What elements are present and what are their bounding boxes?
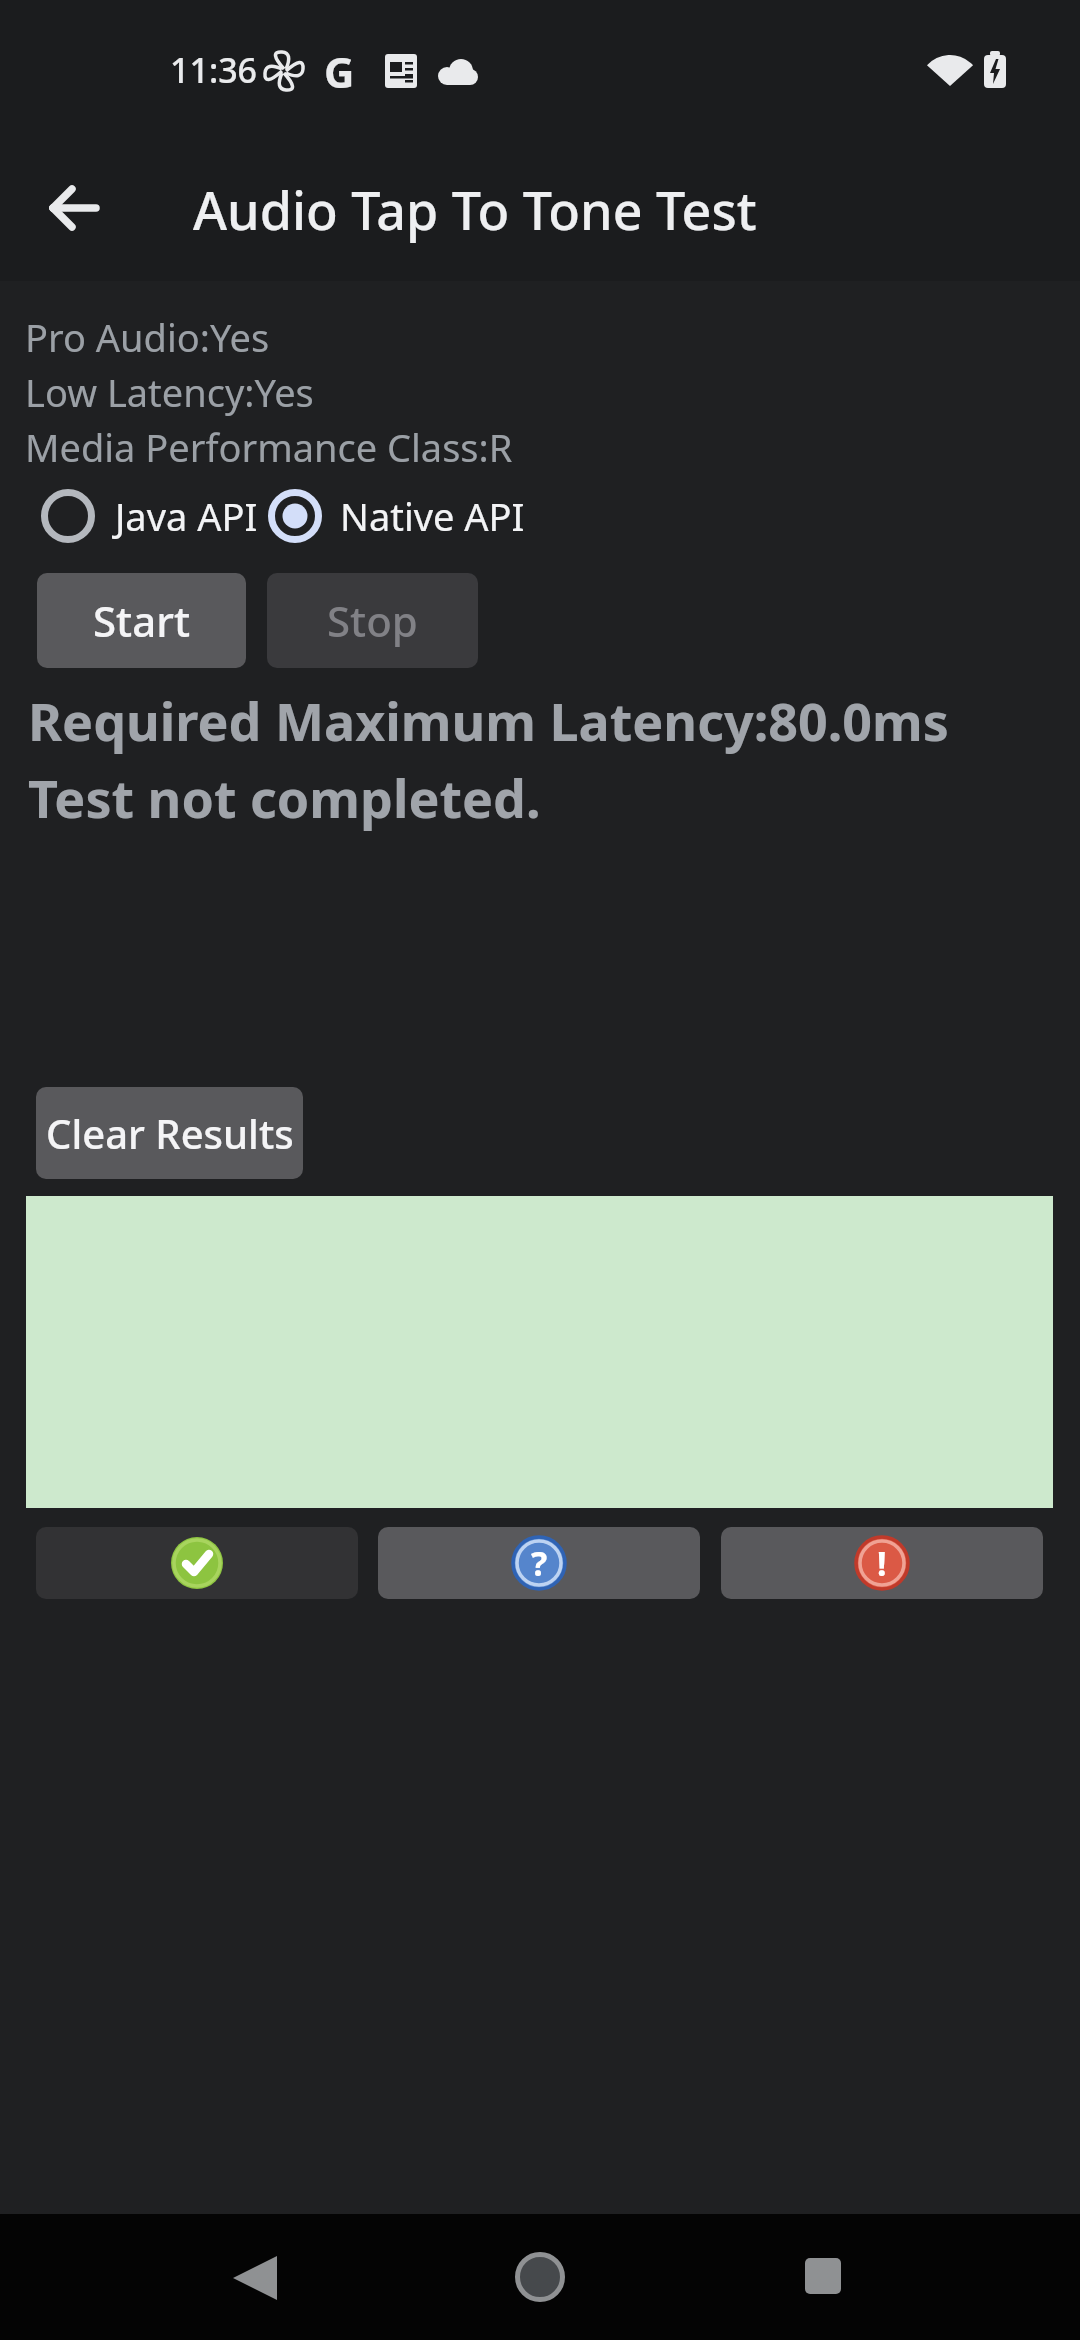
staticText: Stop [327, 592, 418, 649]
staticText: Test not completed. [28, 762, 541, 833]
staticText: G [324, 43, 355, 100]
staticText: 11:36 [170, 47, 258, 93]
staticText: ? [531, 1540, 548, 1586]
staticText: ! [877, 1540, 887, 1586]
staticText: Audio Tap To Tone Test [193, 174, 757, 245]
staticText: Low Latency:Yes [25, 366, 314, 418]
staticText: Native API [340, 490, 525, 542]
staticText: Clear Results [46, 1106, 294, 1160]
staticText: Required Maximum Latency:80.0ms [28, 685, 949, 756]
staticText: Start [93, 592, 191, 649]
staticText: Java API [115, 490, 258, 542]
staticText: Pro Audio:Yes [25, 311, 270, 363]
staticText: Media Performance Class:R [25, 421, 513, 473]
